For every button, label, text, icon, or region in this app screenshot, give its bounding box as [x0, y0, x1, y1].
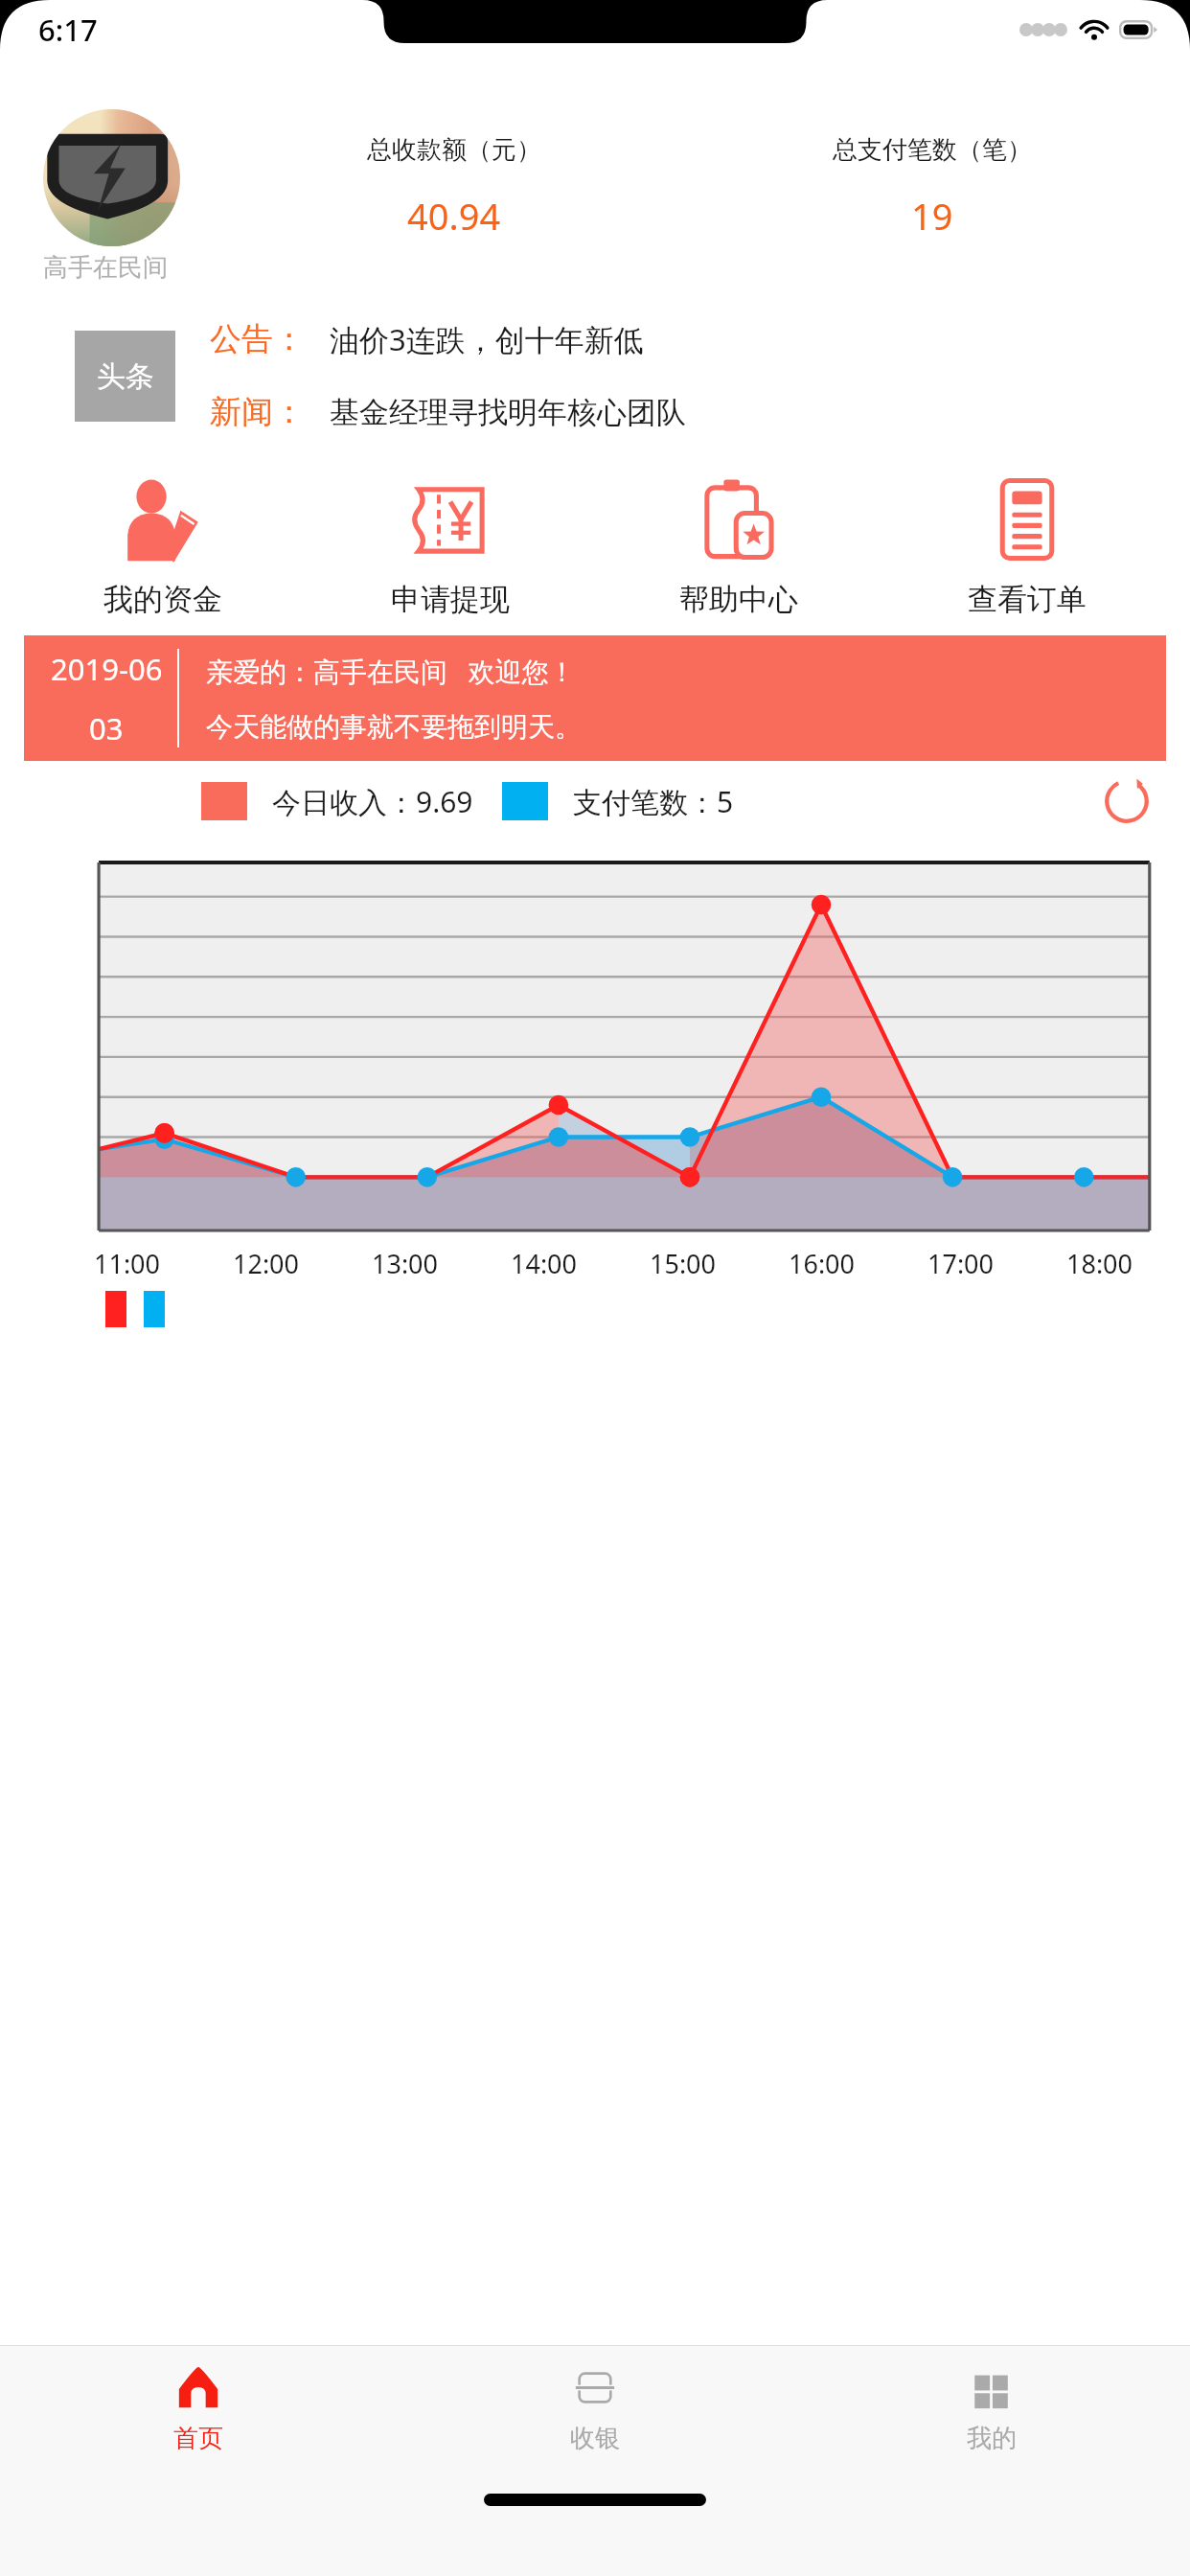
staticText: 收银: [570, 2423, 620, 2454]
staticText: 16:00: [789, 1246, 856, 1281]
staticText: 6:17: [38, 10, 98, 50]
staticText: 15:00: [650, 1246, 717, 1281]
staticText: 帮助中心: [679, 581, 798, 618]
button[interactable]: 申请提现: [307, 473, 594, 620]
staticText: 总支付笔数（笔）: [833, 134, 1032, 166]
staticText: 18:00: [1066, 1246, 1133, 1281]
staticText: 亲爱的：高手在民间 欢迎您！: [206, 653, 576, 689]
staticText: 油价3连跌，创十年新低: [330, 319, 644, 359]
staticText: 今天能做的事就不要拖到明天。: [206, 710, 582, 744]
button[interactable]: 我的资金: [19, 473, 307, 620]
staticText: 我的资金: [103, 581, 222, 618]
button[interactable]: 帮助中心: [594, 473, 882, 620]
button[interactable]: [43, 109, 180, 246]
staticText: 03: [89, 708, 124, 748]
button[interactable]: Refresh: [1100, 774, 1154, 828]
staticText: 支付笔数：5: [573, 782, 734, 821]
staticText: 17:00: [927, 1246, 995, 1281]
staticText: 申请提现: [391, 581, 510, 618]
staticText: 2019-06: [51, 649, 163, 689]
staticText: 12:00: [233, 1246, 300, 1281]
staticText: 11:00: [94, 1246, 161, 1281]
button[interactable]: 2019-06: [24, 635, 1166, 761]
staticText: 查看订单: [968, 581, 1087, 618]
button[interactable]: 我的: [793, 2346, 1190, 2472]
button[interactable]: 首页: [0, 2346, 397, 2472]
staticText: 14:00: [511, 1246, 578, 1281]
staticText: 头条: [97, 358, 154, 395]
staticText: 首页: [173, 2423, 223, 2454]
staticText: 13:00: [372, 1246, 439, 1281]
button[interactable]: 收银: [397, 2346, 793, 2472]
staticText: 今日收入：9.69: [272, 782, 473, 821]
button[interactable]: 新闻：: [210, 392, 1190, 432]
staticText: 总收款额（元）: [367, 134, 541, 166]
button[interactable]: 头条: [75, 331, 175, 422]
staticText: 40.94: [407, 191, 501, 241]
staticText: 我的: [967, 2423, 1017, 2454]
button[interactable]: 查看订单: [882, 473, 1171, 620]
staticText: 公告：: [210, 319, 305, 359]
button[interactable]: 公告：: [210, 319, 1190, 359]
staticText: 19: [911, 191, 953, 241]
staticText: 高手在民间: [43, 252, 168, 284]
staticText: 基金经理寻找明年核心团队: [330, 394, 686, 431]
staticText: 新闻：: [210, 392, 305, 432]
